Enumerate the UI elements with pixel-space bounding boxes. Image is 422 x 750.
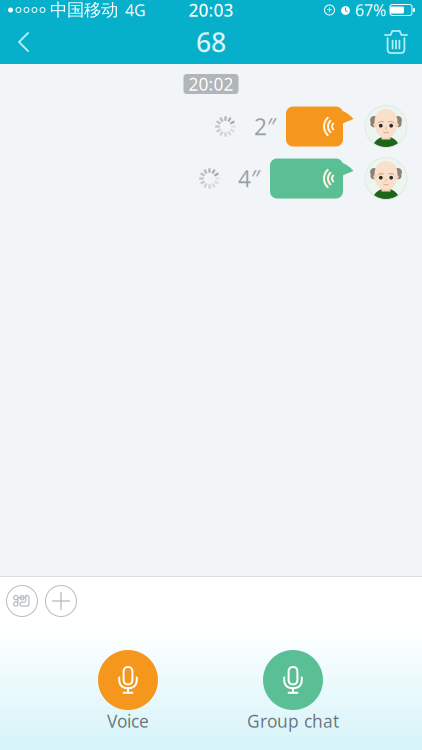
button[interactable]: Voice <box>73 650 183 730</box>
button[interactable]: Back <box>0 20 50 64</box>
staticText: Group chat <box>247 709 339 732</box>
staticText: 中国移动 <box>50 0 118 21</box>
staticText: 20:03 <box>188 0 233 21</box>
staticText: 67% <box>355 0 386 21</box>
button[interactable]: Group chat <box>238 650 348 730</box>
button[interactable]: Play voice message 2″ <box>286 106 355 146</box>
button[interactable]: Play voice message 4″ <box>270 158 355 198</box>
button[interactable]: Delete <box>370 20 422 64</box>
staticText: 68 <box>196 24 226 60</box>
button[interactable]: Stickers <box>2 581 41 620</box>
staticText: 20:02 <box>188 72 233 95</box>
staticText: 4G <box>125 0 146 21</box>
staticText: 2″ <box>254 111 276 141</box>
button[interactable]: More <box>41 581 80 620</box>
staticText: 4″ <box>238 163 260 193</box>
staticText: Voice <box>107 709 149 732</box>
